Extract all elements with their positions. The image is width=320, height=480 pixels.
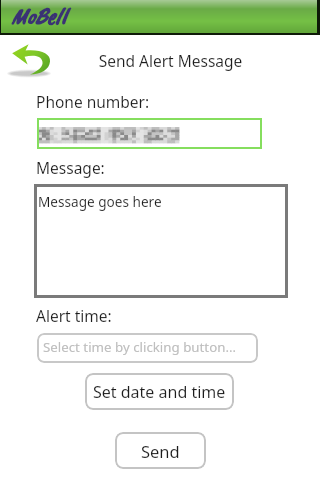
button[interactable]	[37, 118, 262, 149]
button[interactable]: Message goes here	[34, 184, 288, 298]
staticText: Phone number:	[36, 91, 150, 112]
button[interactable]: Set date and time	[85, 373, 234, 410]
button[interactable]: Send	[115, 432, 206, 469]
staticText: Send Alert Message	[60, 50, 281, 71]
staticText: Select time by clicking button…	[43, 338, 236, 356]
staticText: Message:	[36, 157, 105, 178]
staticText: MoBell	[10, 2, 66, 31]
button[interactable]: Select time by clicking button…	[37, 333, 258, 363]
staticText: Send	[141, 440, 180, 462]
staticText: Set date and time	[93, 381, 226, 403]
button[interactable]: Back	[10, 42, 52, 78]
staticText: Alert time:	[36, 305, 112, 326]
staticText: Message goes here	[38, 192, 162, 211]
